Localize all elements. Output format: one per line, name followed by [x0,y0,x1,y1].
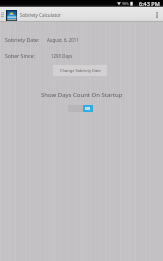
button[interactable]: Change Sobriety Date [53,65,107,76]
button[interactable]: Open navigation menu [0,7,5,22]
staticText: 98% [122,1,129,6]
staticText: August, 6, 2011 [47,37,79,43]
staticText: 6:43 PM [139,0,160,7]
staticText: 1293 Days [51,53,73,59]
staticText: Show Days Count On Startup [41,91,123,99]
button[interactable]: More options [150,7,163,22]
staticText: Sober Since: [5,52,35,59]
staticText: ON [85,107,91,111]
staticText: Sobriety Calculator [20,12,61,18]
staticText: Change Sobriety Date [60,68,101,73]
staticText: Sobriety Date: [5,36,40,43]
button[interactable]: Show days count on startup, on [68,105,93,112]
